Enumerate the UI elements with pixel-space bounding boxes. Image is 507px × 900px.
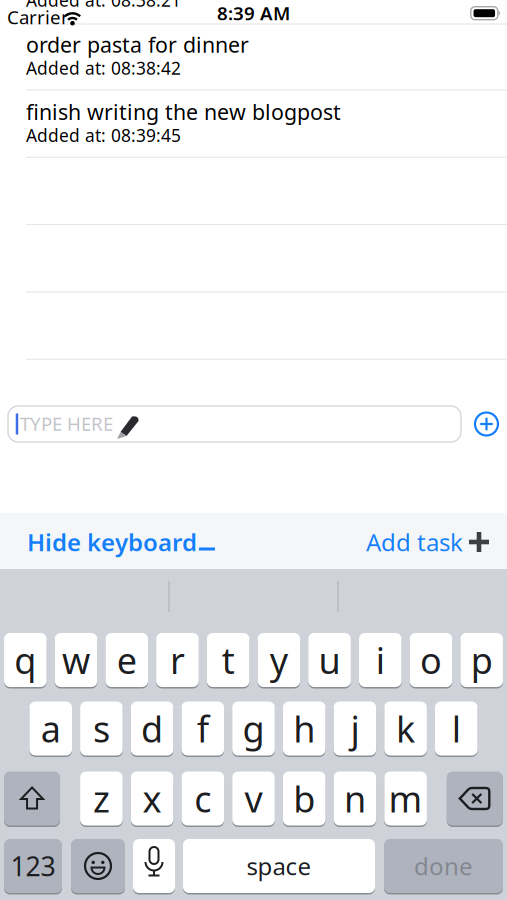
staticText: Added at: 08:38:42 [26,56,181,79]
button[interactable]: Task entry field [8,406,461,442]
staticText: n [344,775,366,822]
staticText: t [222,636,235,684]
button[interactable]: Add task [366,514,490,570]
button[interactable]: s [80,700,123,756]
staticText: finish writing the new blogpost [26,98,341,126]
button[interactable]: x [131,770,173,826]
button[interactable]: d [131,700,173,756]
button[interactable]: Emoji [71,838,125,894]
staticText: f [197,705,209,752]
button[interactable]: h [283,700,325,756]
staticText: y [270,636,288,684]
button[interactable]: i [359,632,402,688]
button[interactable]: finish writing the new blogpost [0,90,507,157]
staticText: TYPE HERE [20,411,113,436]
staticText: Add task [366,526,463,558]
staticText: a [41,705,61,752]
staticText: h [293,705,315,752]
button[interactable]: p [460,632,503,688]
button[interactable]: g [232,700,275,756]
staticText: z [93,775,110,822]
staticText: o [420,636,442,684]
staticText: Added at: 08:38:21 [26,0,181,11]
button[interactable]: q [4,632,47,688]
staticText: Added at: 08:39:45 [26,124,181,147]
button[interactable]: z [80,770,123,826]
staticText: m [389,775,423,822]
button[interactable]: t [207,632,249,688]
staticText: x [143,775,162,822]
button[interactable]: done [384,838,503,894]
button[interactable]: Add task [475,412,498,435]
staticText: v [244,775,262,822]
button[interactable]: y [258,632,300,688]
button[interactable]: a [29,700,72,756]
button[interactable]: b [283,770,325,826]
button[interactable]: m [384,770,427,826]
button[interactable]: v [232,770,275,826]
button[interactable]: l [435,700,478,756]
staticText: d [141,705,163,752]
staticText: s [93,705,110,752]
button[interactable]: j [334,700,376,756]
staticText: e [117,636,137,684]
staticText: l [452,705,461,752]
staticText: p [471,636,493,684]
button[interactable]: o [410,632,452,688]
staticText: c [194,775,211,822]
staticText: space [246,850,311,882]
button[interactable]: c [181,770,224,826]
staticText: Carrier [7,5,69,29]
button[interactable]: r [156,632,199,688]
staticText: q [14,636,36,684]
staticText: u [319,636,341,684]
button[interactable]: w [55,632,97,688]
staticText: i [376,636,385,684]
staticText: order pasta for dinner [26,30,249,59]
staticText: g [242,705,264,752]
button[interactable]: Delete [447,770,503,826]
staticText: b [293,775,315,822]
button[interactable]: k [384,700,427,756]
button[interactable]: e [105,632,148,688]
staticText: Hide keyboard [27,526,197,558]
button[interactable]: Dictate [133,838,175,894]
button[interactable]: f [181,700,224,756]
staticText: done [414,850,473,882]
button[interactable]: Hide keyboard [27,514,215,570]
button[interactable]: order pasta for dinner [0,23,507,90]
button[interactable]: 123 [4,838,62,894]
button[interactable]: space [183,838,375,894]
staticText: j [350,705,359,752]
staticText: r [170,636,185,684]
button[interactable]: n [334,770,376,826]
staticText: w [62,636,90,684]
staticText: 8:39 AM [217,1,290,25]
button[interactable]: u [308,632,351,688]
staticText: 123 [10,848,55,884]
button[interactable]: Shift [4,770,60,826]
staticText: k [396,705,415,752]
